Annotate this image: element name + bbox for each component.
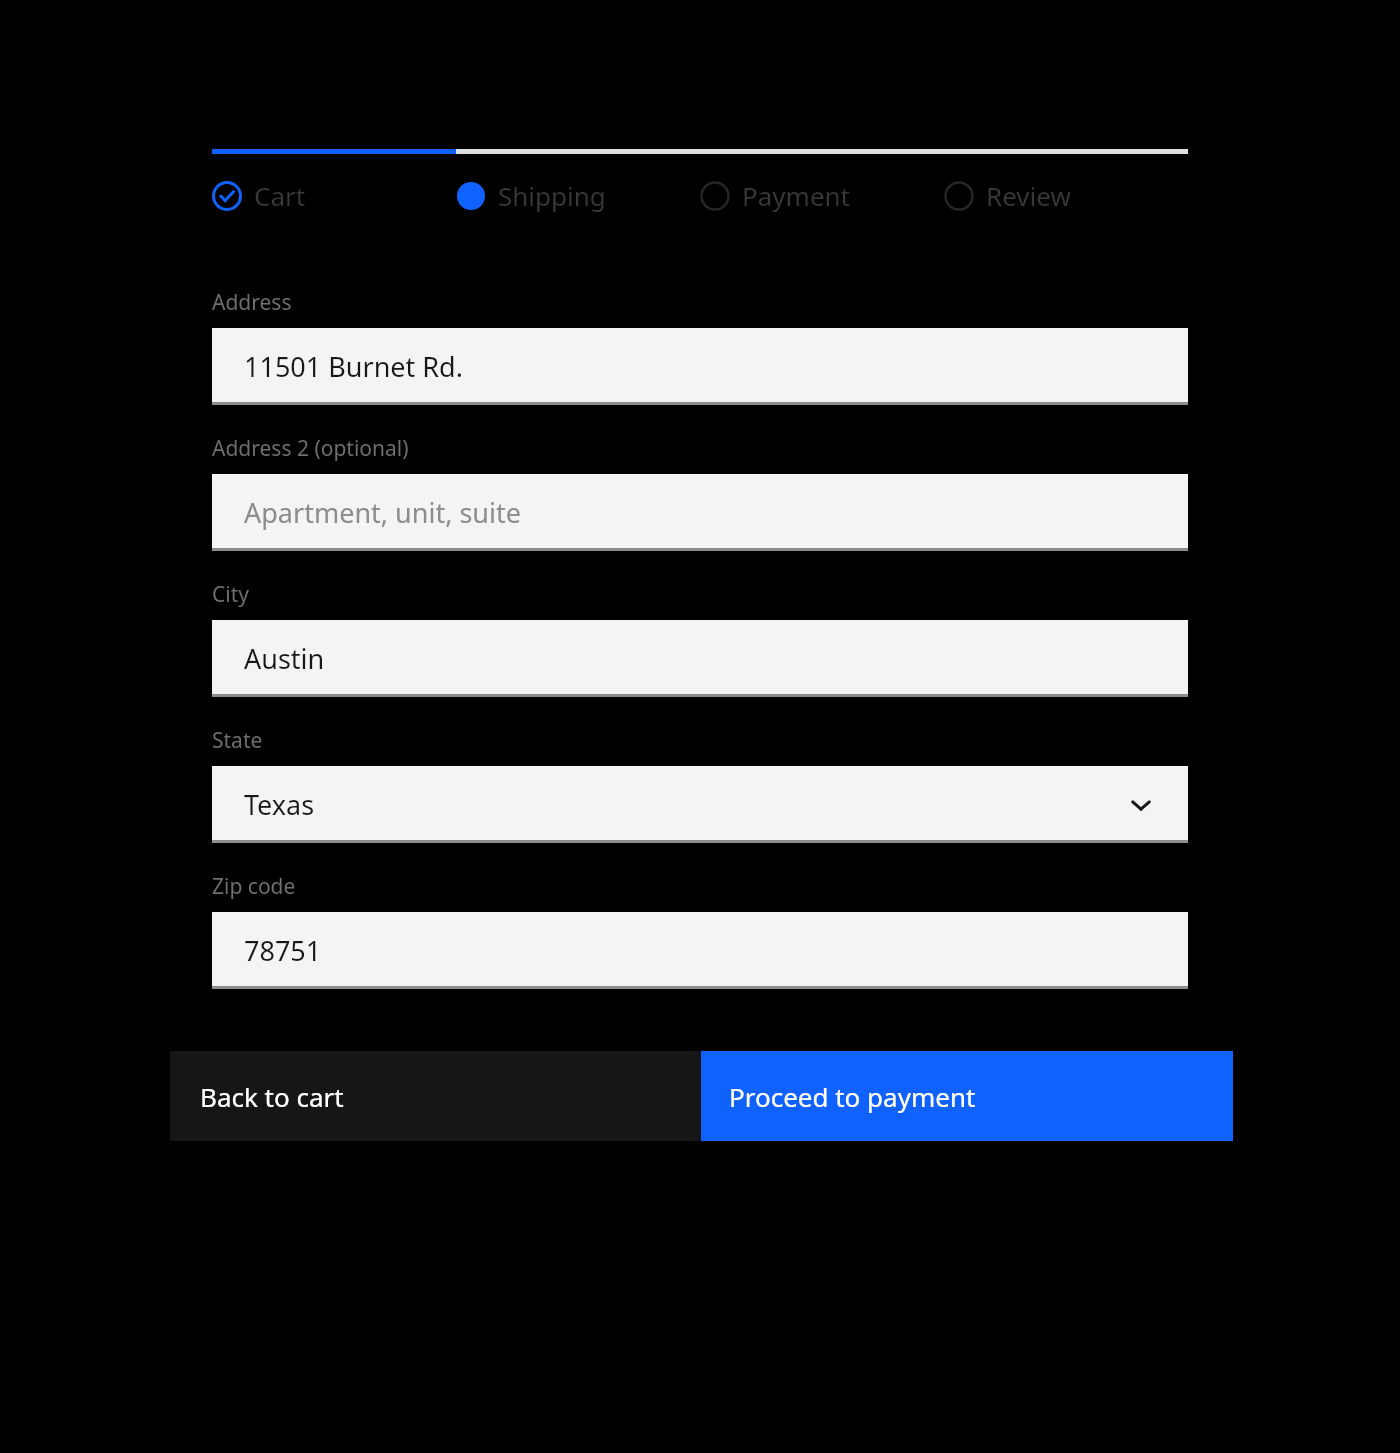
button[interactable]: Texas <box>212 766 1188 843</box>
button[interactable]: Back to cart <box>170 1051 701 1141</box>
staticText: Address 2 (optional) <box>212 434 409 463</box>
button[interactable]: 78751 <box>212 912 1188 989</box>
staticText: Austin <box>244 640 1188 677</box>
button[interactable]: Review <box>944 174 1188 217</box>
staticText: Cart <box>254 178 306 213</box>
staticText: Back to cart <box>200 1079 344 1114</box>
button[interactable]: 11501 Burnet Rd. <box>212 328 1188 405</box>
button[interactable]: Apartment, unit, suite <box>212 474 1188 551</box>
staticText: Texas <box>244 786 1128 823</box>
button[interactable]: Austin <box>212 620 1188 697</box>
staticText: Address <box>212 288 292 317</box>
staticText: Proceed to payment <box>729 1079 976 1114</box>
other: Open state list <box>1128 792 1154 818</box>
staticText: State <box>212 726 263 755</box>
staticText: City <box>212 580 249 609</box>
button[interactable]: Cart <box>212 174 456 217</box>
button[interactable]: Proceed to payment <box>701 1051 1233 1141</box>
staticText: Payment <box>742 178 851 213</box>
staticText: 11501 Burnet Rd. <box>244 348 1188 385</box>
staticText: Shipping <box>498 178 606 213</box>
staticText: Zip code <box>212 872 296 901</box>
button[interactable]: Payment <box>700 174 944 217</box>
staticText: Apartment, unit, suite <box>244 494 1188 531</box>
staticText: 78751 <box>244 932 1188 969</box>
staticText: Review <box>986 178 1071 213</box>
button[interactable]: Shipping <box>456 174 700 217</box>
